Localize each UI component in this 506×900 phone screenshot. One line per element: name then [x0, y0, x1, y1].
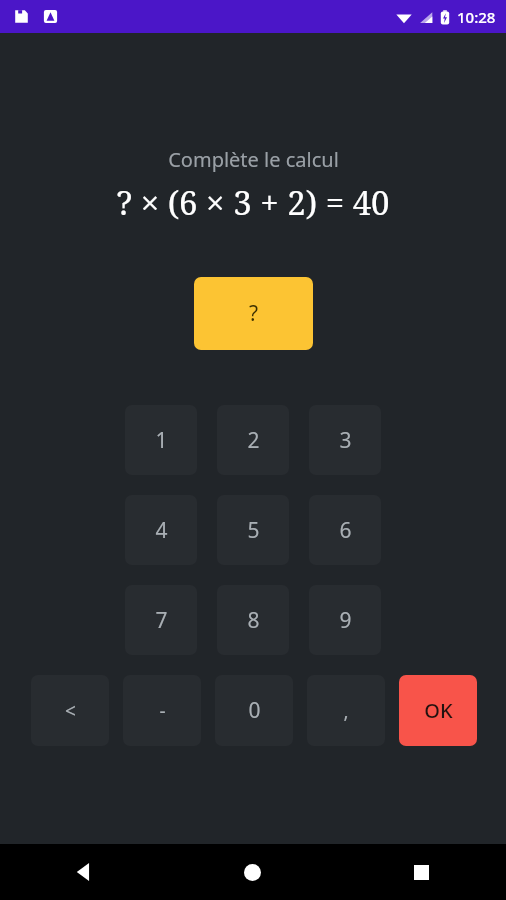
staticText: 3: [339, 426, 352, 455]
button[interactable]: Home: [168, 844, 337, 900]
button[interactable]: ,: [307, 675, 385, 746]
button[interactable]: ?: [194, 277, 313, 350]
staticText: 6: [339, 516, 352, 545]
staticText: <: [65, 698, 76, 724]
button[interactable]: Recent apps: [337, 844, 506, 900]
button[interactable]: -: [123, 675, 201, 746]
staticText: Complète le calcul: [168, 146, 339, 173]
staticText: OK: [424, 697, 453, 724]
button[interactable]: 7: [125, 585, 197, 655]
staticText: -: [159, 698, 166, 724]
staticText: 9: [339, 606, 352, 635]
staticText: 0: [248, 696, 261, 725]
button[interactable]: 1: [125, 405, 197, 475]
staticText: ? × (6 × 3 + 2) = 40: [116, 180, 390, 225]
staticText: 2: [247, 426, 260, 455]
button[interactable]: 2: [217, 405, 289, 475]
button[interactable]: Back: [0, 844, 168, 900]
button[interactable]: 0: [215, 675, 293, 746]
button[interactable]: 6: [309, 495, 381, 565]
staticText: 5: [247, 516, 260, 545]
staticText: ?: [249, 299, 259, 328]
staticText: 7: [155, 606, 168, 635]
button[interactable]: 8: [217, 585, 289, 655]
staticText: ,: [343, 698, 349, 724]
staticText: 1: [155, 426, 168, 455]
staticText: 10:28: [457, 7, 496, 27]
button[interactable]: 3: [309, 405, 381, 475]
staticText: 8: [247, 606, 260, 635]
button[interactable]: 4: [125, 495, 197, 565]
button[interactable]: <: [31, 675, 109, 746]
button[interactable]: OK: [399, 675, 477, 746]
button[interactable]: 5: [217, 495, 289, 565]
button[interactable]: 9: [309, 585, 381, 655]
staticText: 4: [155, 516, 168, 545]
